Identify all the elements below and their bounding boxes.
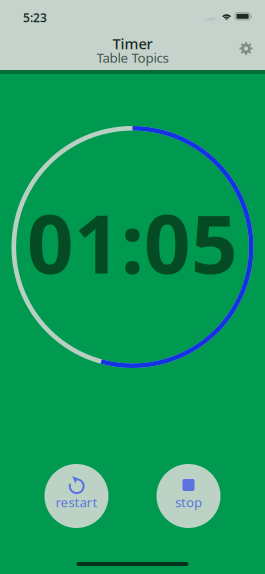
staticText: restart — [55, 493, 97, 511]
staticText: Table Topics — [96, 49, 168, 66]
button[interactable]: Settings — [229, 31, 263, 65]
staticText: stop — [175, 493, 202, 511]
button[interactable]: restart — [44, 464, 108, 528]
staticText: 5:23 — [23, 9, 47, 25]
button[interactable]: stop — [156, 464, 220, 528]
staticText: 01:05 — [27, 188, 238, 296]
staticText: Timer — [112, 34, 152, 53]
